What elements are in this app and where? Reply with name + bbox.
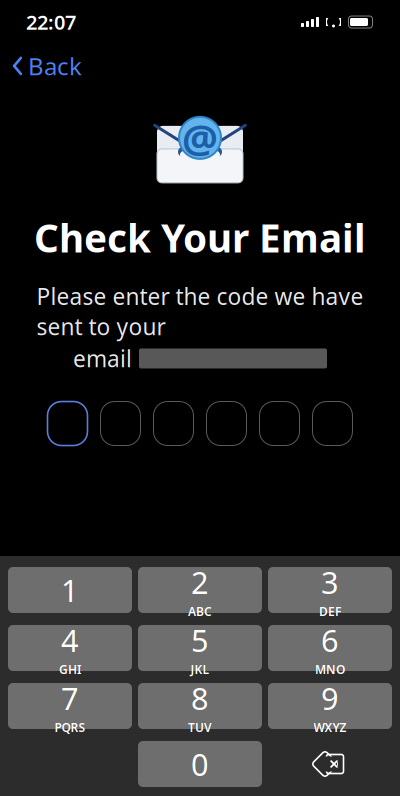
staticText: email — [73, 343, 132, 373]
staticText: GHI — [59, 661, 81, 677]
button[interactable]: 3 — [268, 567, 392, 613]
button[interactable]: 4 — [8, 625, 132, 671]
button[interactable]: 1 — [8, 567, 132, 613]
staticText: TUV — [188, 719, 212, 735]
button[interactable]: Delete — [268, 741, 392, 787]
staticText: 5 — [191, 620, 209, 660]
button[interactable]: 0 — [138, 741, 262, 787]
staticText: 3 — [321, 562, 339, 602]
staticText: 6 — [321, 620, 339, 660]
staticText: JKL — [190, 661, 209, 677]
staticText: 2 — [191, 562, 209, 602]
staticText: Check Your Email — [34, 212, 366, 263]
staticText: 9 — [321, 678, 339, 718]
staticText: PQRS — [54, 719, 85, 735]
button[interactable]: 7 — [8, 683, 132, 729]
staticText: ABC — [188, 603, 212, 619]
button[interactable]: 5 — [138, 625, 262, 671]
staticText: 4 — [61, 620, 79, 660]
staticText: 1 — [61, 570, 79, 610]
staticText: MNO — [315, 661, 345, 677]
staticText: 7 — [61, 678, 79, 718]
staticText: 0 — [191, 744, 209, 784]
staticText: 8 — [191, 678, 209, 718]
button[interactable]: 9 — [268, 683, 392, 729]
staticText: @ — [182, 111, 218, 164]
staticText: Please enter the code we have sent to yo… — [36, 281, 363, 341]
button[interactable]: Back — [2, 44, 92, 88]
staticText: DEF — [319, 603, 341, 619]
staticText: 22:07 — [26, 9, 76, 35]
button[interactable]: 8 — [138, 683, 262, 729]
button[interactable]: 6 — [268, 625, 392, 671]
button[interactable]: 2 — [138, 567, 262, 613]
staticText: Back — [28, 50, 82, 82]
staticText: WXYZ — [313, 719, 346, 735]
